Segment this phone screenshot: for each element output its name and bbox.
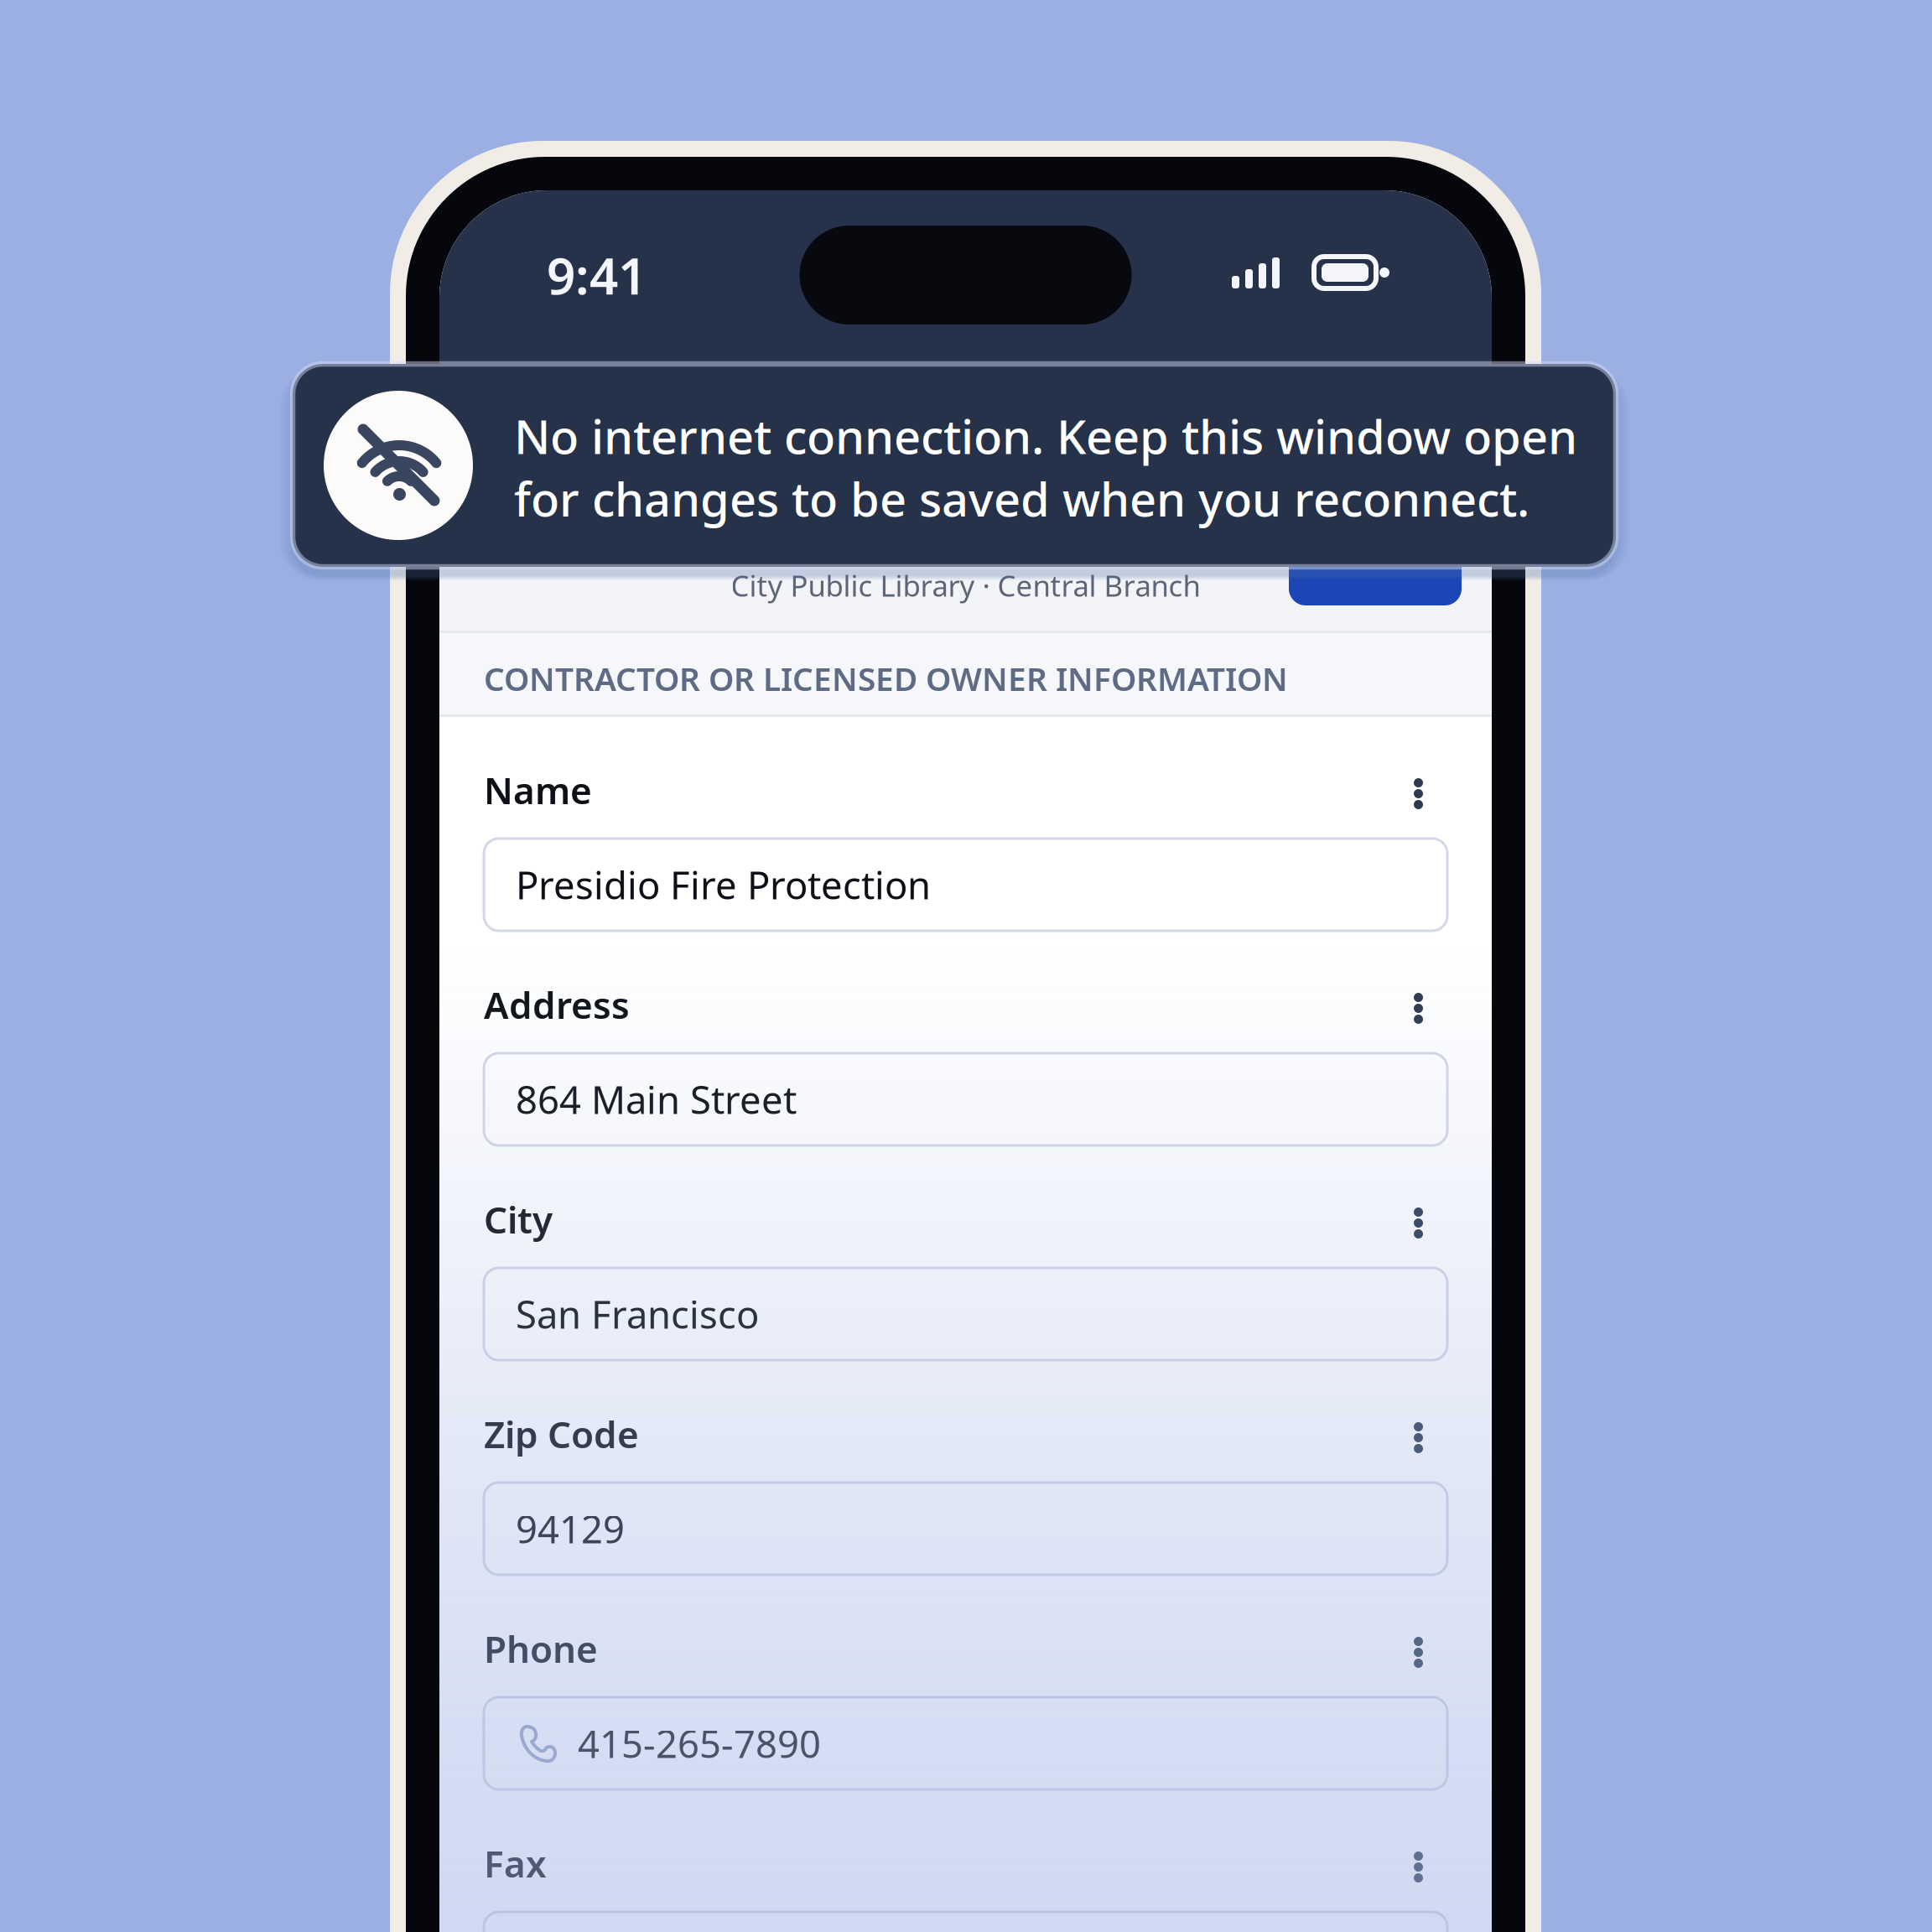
staticText: Name	[484, 765, 592, 814]
staticText: Address	[484, 980, 630, 1029]
staticText: 864 Main Street	[516, 1074, 797, 1125]
staticText: Presidio Fire Protection	[516, 859, 931, 910]
staticText: Phone	[484, 1624, 598, 1673]
staticText: Zip Code	[484, 1409, 639, 1458]
button[interactable]: Fax options	[1394, 1836, 1443, 1903]
button[interactable]: Zip Code: 94129	[484, 1483, 1447, 1575]
button[interactable]: Name: Presidio Fire Protection	[484, 839, 1447, 931]
staticText: City	[484, 1195, 553, 1244]
staticText: 9:41	[547, 242, 647, 308]
staticText: CONTRACTOR OR LICENSED OWNER INFORMATION	[484, 657, 1288, 700]
button[interactable]: Phone: 415-265-7890	[484, 1697, 1447, 1789]
button[interactable]: Phone options	[1394, 1621, 1443, 1688]
staticText: 415-265-7890	[578, 1718, 821, 1769]
button[interactable]: City options	[1394, 1192, 1443, 1259]
staticText: 94129	[516, 1503, 625, 1554]
staticText: Next	[1334, 524, 1417, 571]
staticText: Fax	[484, 1839, 547, 1888]
button[interactable]: Zip Code options	[1394, 1406, 1443, 1473]
button[interactable]: City: San Francisco	[484, 1268, 1447, 1360]
button[interactable]: Address: 864 Main Street	[484, 1053, 1447, 1145]
button[interactable]: Address options	[1394, 977, 1443, 1044]
button[interactable]: Next	[1289, 518, 1462, 605]
staticText: No internet connection. Keep this window…	[514, 405, 1577, 529]
button[interactable]: Fax	[484, 1912, 1447, 1932]
staticText: San Francisco	[516, 1289, 759, 1339]
button[interactable]: Name options	[1394, 762, 1443, 829]
staticText: City Public Library · Central Branch	[731, 566, 1200, 605]
